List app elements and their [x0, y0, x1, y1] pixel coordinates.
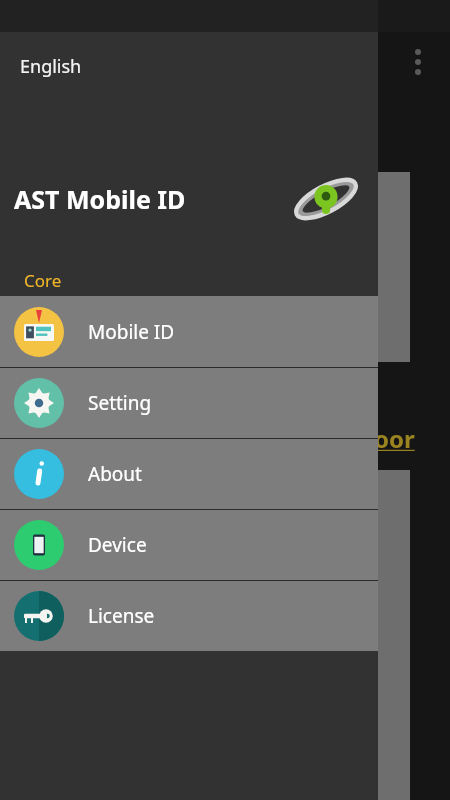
button[interactable]: More options: [398, 42, 438, 82]
staticText: Mobile ID: [88, 319, 175, 345]
button[interactable]: Setting: [0, 368, 378, 438]
button[interactable]: Device: [0, 510, 378, 580]
staticText: About: [88, 461, 142, 487]
button[interactable]: English: [6, 46, 96, 87]
staticText: License: [88, 603, 155, 629]
staticText: Core: [24, 269, 62, 292]
button[interactable]: About: [0, 439, 378, 509]
button[interactable]: Mobile ID: [0, 296, 378, 367]
button[interactable]: License: [0, 581, 378, 651]
staticText: oor: [374, 422, 415, 455]
staticText: English: [20, 54, 82, 79]
staticText: AST Mobile ID: [14, 182, 186, 216]
staticText: Setting: [88, 390, 152, 416]
staticText: Device: [88, 532, 147, 558]
